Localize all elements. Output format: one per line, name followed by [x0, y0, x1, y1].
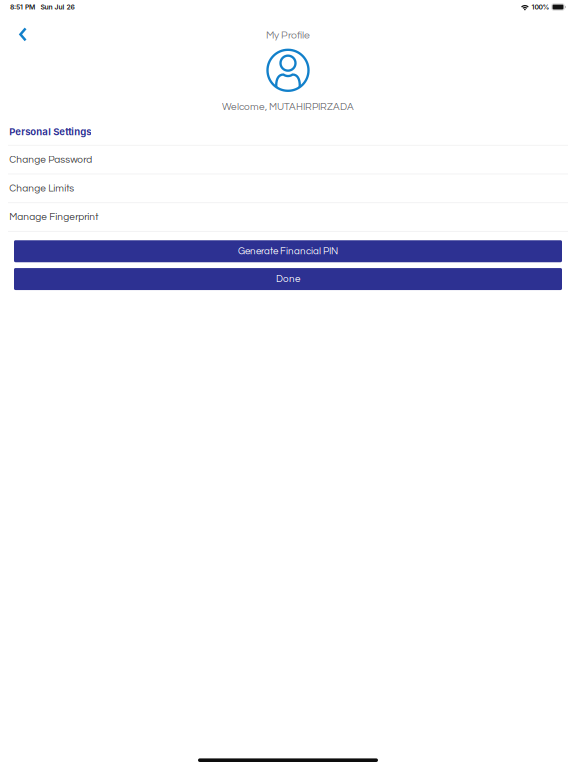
staticText: 100% — [532, 3, 550, 11]
staticText: Welcome, MUTAHIRPIRZADA — [222, 102, 354, 112]
staticText: 8:51 PM — [10, 3, 35, 11]
staticText: Sun Jul 26 — [40, 3, 74, 11]
button[interactable]: Manage Fingerprint — [0, 203, 576, 232]
button[interactable]: Generate Financial PIN — [14, 240, 562, 262]
staticText: Change Password — [9, 154, 92, 165]
staticText: Manage Fingerprint — [9, 212, 98, 222]
button[interactable]: Done — [14, 268, 562, 290]
staticText: Generate Financial PIN — [238, 246, 338, 256]
staticText: Done — [276, 274, 300, 284]
staticText: Change Limits — [9, 183, 74, 193]
button[interactable]: Change Limits — [0, 174, 576, 203]
button[interactable]: Back — [10, 23, 36, 45]
button[interactable]: Change Password — [0, 146, 576, 174]
staticText: Personal Settings — [9, 126, 91, 137]
staticText: My Profile — [266, 30, 310, 41]
